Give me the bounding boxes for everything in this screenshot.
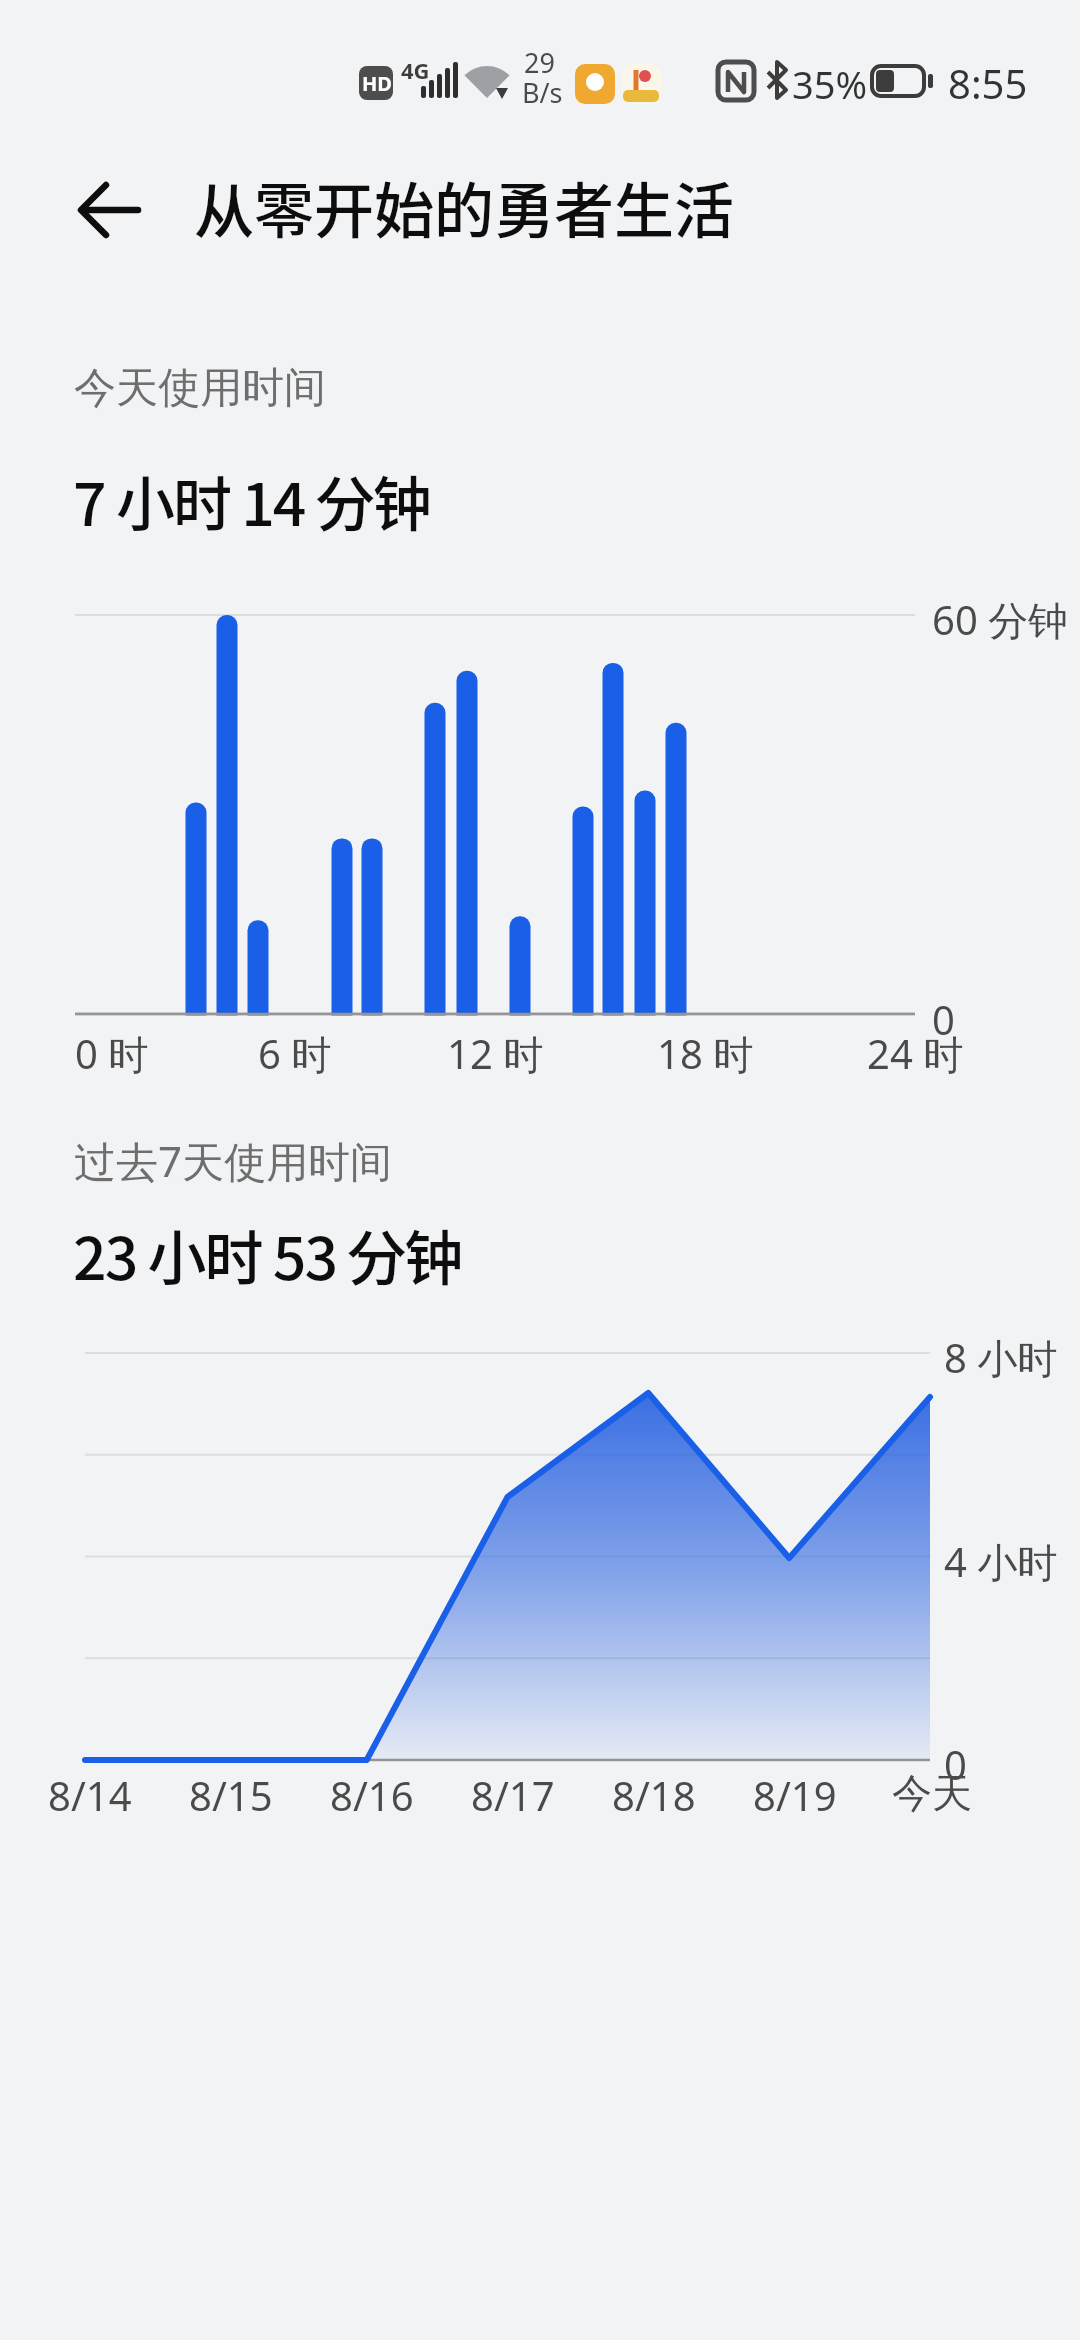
staticText: 35% — [792, 58, 868, 110]
staticText: 8 小时 — [944, 1330, 1058, 1385]
staticText: 8/17 — [471, 1768, 555, 1822]
staticText: 过去7天使用时间 — [74, 1132, 393, 1189]
staticText: 18 时 — [657, 1026, 754, 1081]
staticText: 0 — [932, 992, 955, 1046]
staticText: 12 时 — [447, 1026, 544, 1081]
staticText: 今天使用时间 — [74, 362, 326, 415]
staticText: 8/16 — [330, 1768, 414, 1822]
staticText: 8/15 — [189, 1768, 273, 1822]
staticText: 24 时 — [867, 1026, 964, 1081]
staticText: 7 小时 14 分钟 — [73, 458, 430, 543]
staticText: 8/14 — [48, 1768, 132, 1822]
button[interactable] — [60, 165, 160, 255]
staticText: 29 — [524, 44, 555, 81]
staticText: HD — [362, 70, 392, 97]
staticText: 今天 — [892, 1768, 972, 1818]
staticText: 8/19 — [753, 1768, 837, 1822]
staticText: B/s — [522, 74, 563, 111]
staticText: 60 分钟 — [932, 592, 1069, 647]
staticText: 6 时 — [258, 1026, 332, 1081]
staticText: 4G — [401, 55, 430, 85]
staticText: 从零开始的勇者生活 — [194, 163, 734, 250]
staticText: 0 时 — [75, 1026, 149, 1081]
staticText: 8:55 — [948, 56, 1028, 110]
staticText: 23 小时 53 分钟 — [73, 1212, 462, 1297]
staticText: 8/18 — [612, 1768, 696, 1822]
staticText: 0 — [944, 1737, 967, 1791]
staticText: 4 小时 — [944, 1534, 1058, 1589]
